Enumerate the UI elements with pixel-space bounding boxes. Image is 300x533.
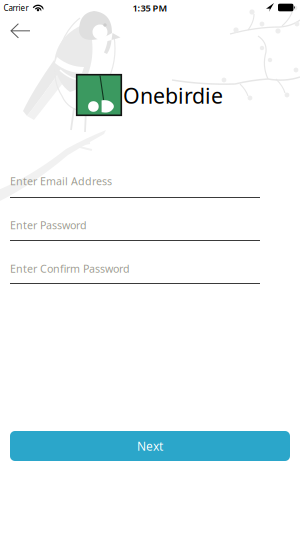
staticText: Enter Confirm Password	[10, 261, 130, 276]
staticText: Carrier	[3, 3, 28, 13]
button[interactable]: Next	[10, 431, 290, 461]
staticText: Enter Password	[10, 218, 87, 232]
staticText: Onebirdie	[123, 81, 223, 110]
staticText: Enter Email Address	[10, 174, 112, 188]
button[interactable]: Back	[0, 15, 43, 48]
textField[interactable]: Enter Email Address	[10, 174, 261, 188]
textField[interactable]: Enter Password	[10, 218, 261, 232]
staticText: 1:35 PM	[132, 2, 167, 14]
textField[interactable]: Enter Confirm Password	[10, 261, 261, 276]
staticText: Next	[137, 438, 163, 454]
